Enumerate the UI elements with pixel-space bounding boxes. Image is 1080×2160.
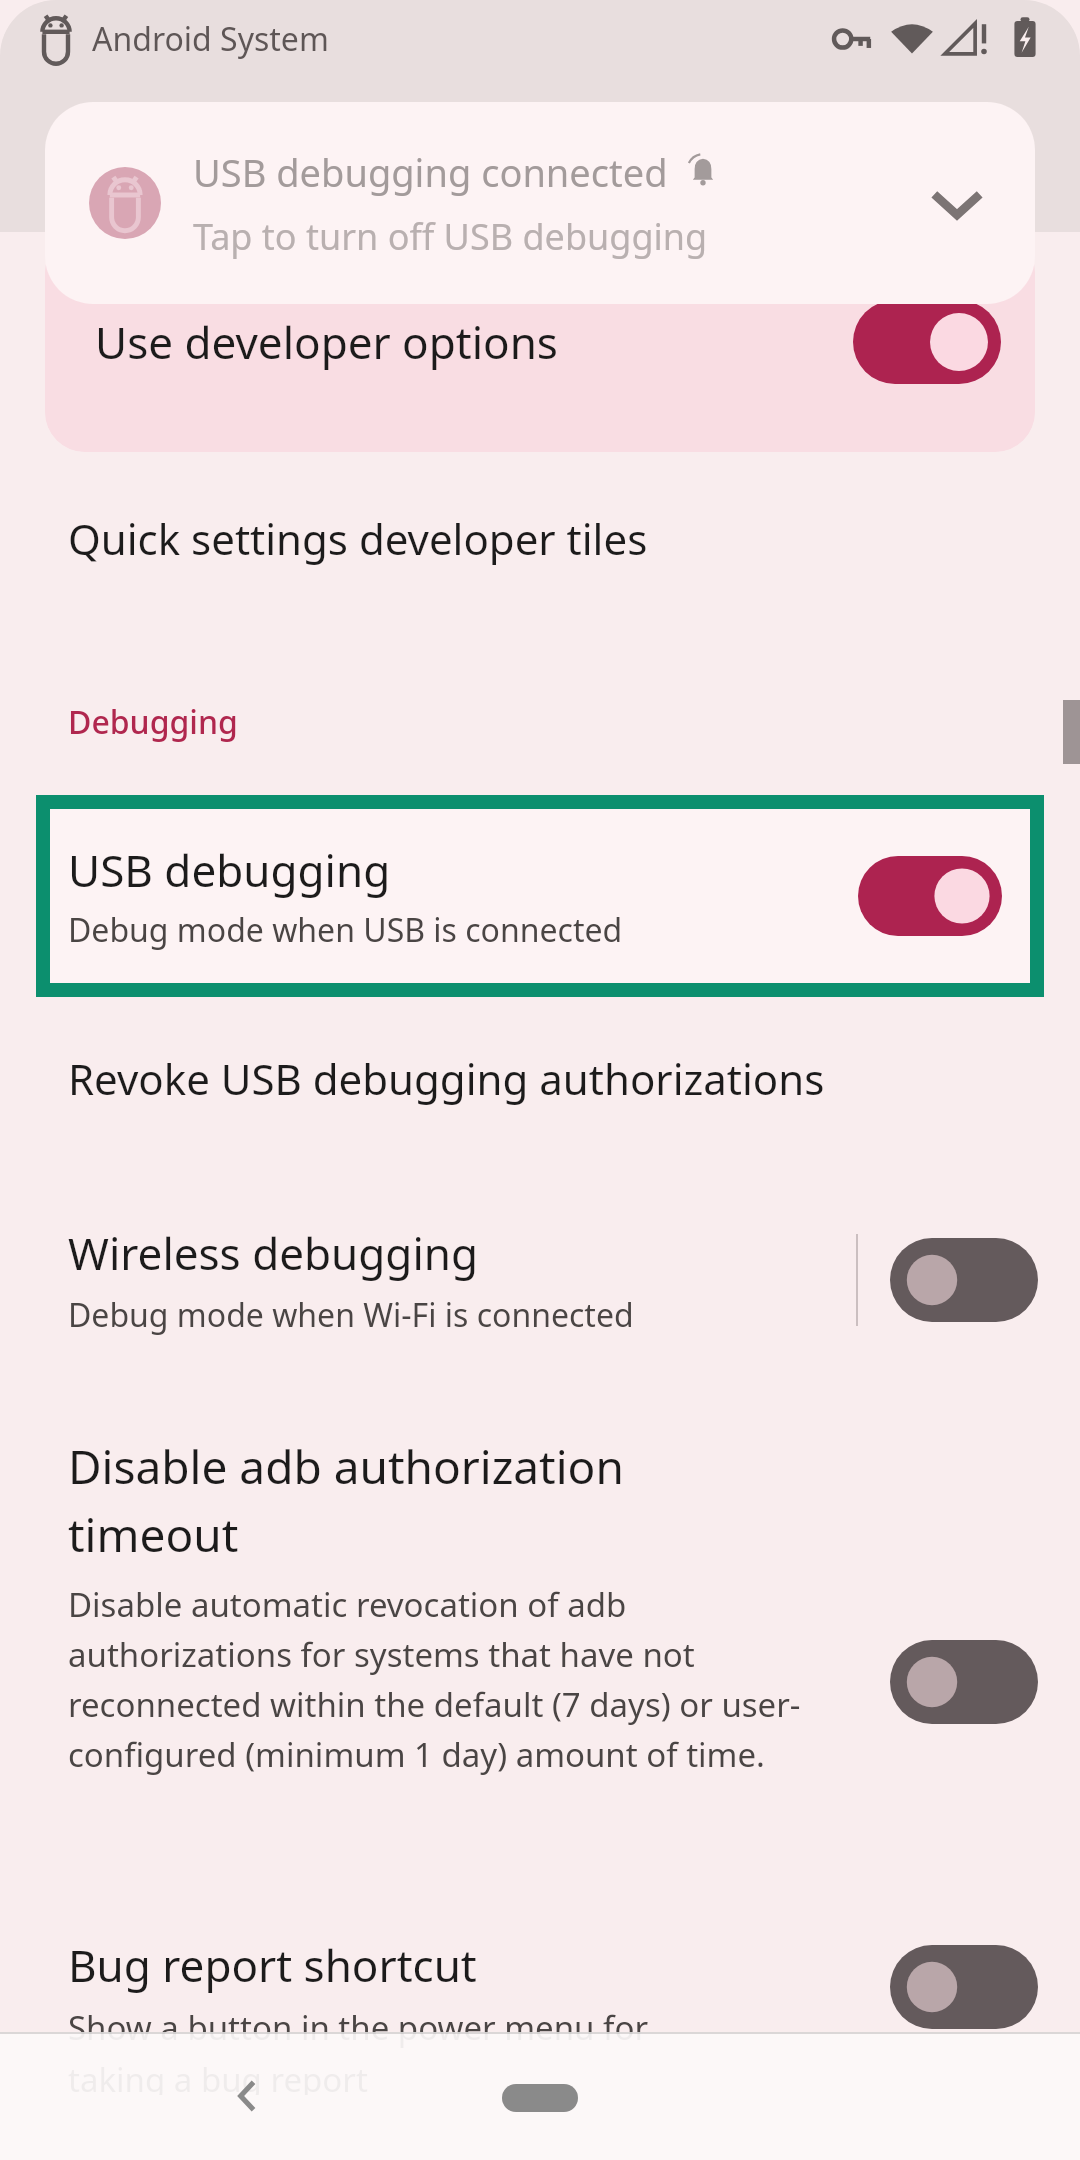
staticText: Quick settings developer tiles	[68, 510, 648, 567]
staticText: USB debugging connected	[193, 146, 668, 198]
staticText: Debug mode when USB is connected	[68, 908, 623, 952]
staticText: Show a button in the power menu for taki…	[68, 2005, 649, 2095]
staticText: Revoke USB debugging authorizations	[68, 1050, 825, 1107]
button[interactable]: Wireless debugging	[0, 1205, 1080, 1355]
button[interactable]: Use developer options	[45, 232, 1035, 452]
button[interactable]: Bug report shortcut	[0, 1935, 1080, 2095]
staticText: Debug mode when Wi-Fi is connected	[68, 1293, 634, 1337]
staticText: Tap to turn off USB debugging	[193, 212, 708, 261]
staticText: Bug report shortcut	[68, 1935, 477, 1995]
staticText: Wireless debugging	[68, 1223, 478, 1283]
staticText: Disable automatic revocation of adb auth…	[68, 1582, 808, 1777]
button[interactable]: USB debugging	[36, 795, 1044, 997]
button[interactable]: Expand notification	[909, 155, 1005, 251]
button[interactable]: Back	[200, 2048, 296, 2144]
staticText: Debugging	[68, 700, 238, 744]
staticText: Disable adb authorization timeout	[68, 1435, 624, 1566]
button[interactable]: Revoke USB debugging authorizations	[0, 1030, 1080, 1126]
button[interactable]: Quick settings developer tiles	[0, 490, 1080, 586]
staticText: Use developer options	[95, 312, 853, 372]
staticText: Android System	[92, 17, 329, 61]
button[interactable]: Home	[502, 2084, 578, 2112]
staticText: USB debugging	[68, 840, 391, 900]
button[interactable]: Disable adb authorization timeout	[0, 1425, 1080, 1825]
button[interactable]: USB debugging connected	[45, 102, 1035, 304]
